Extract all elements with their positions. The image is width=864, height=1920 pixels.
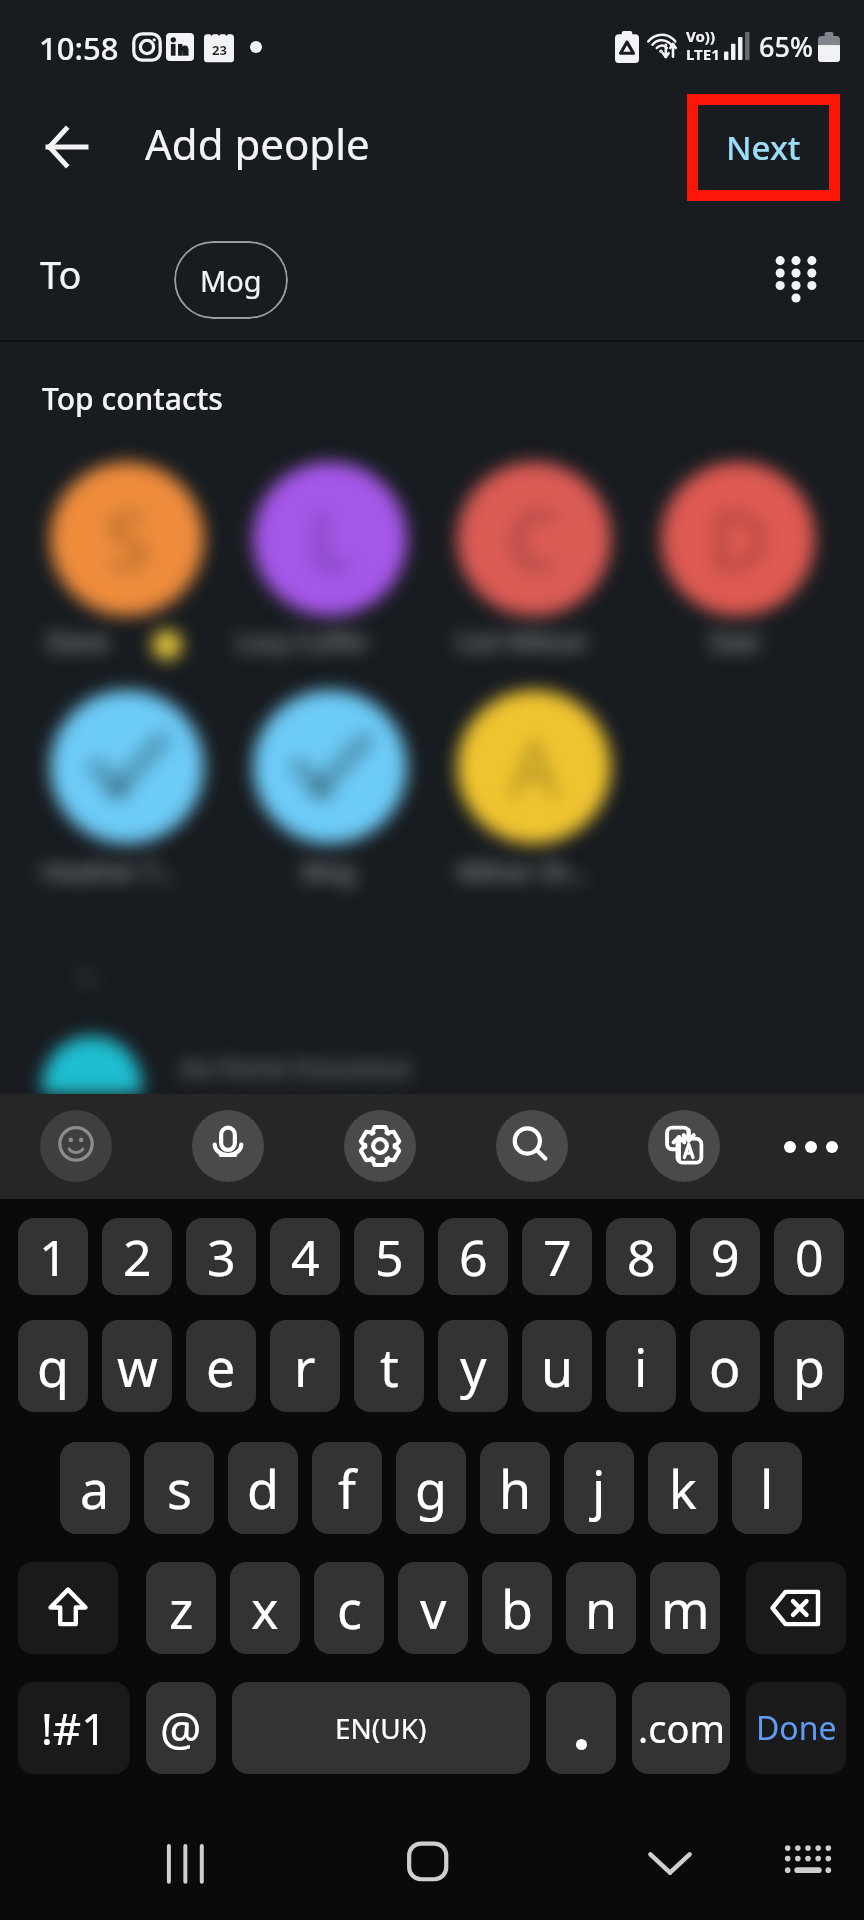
button[interactable]: x — [230, 1562, 300, 1654]
button[interactable]: v — [398, 1562, 468, 1654]
button[interactable]: Search — [496, 1110, 568, 1182]
button[interactable] — [546, 1682, 616, 1774]
button[interactable]: D — [661, 462, 815, 616]
staticText: 10:58 — [39, 27, 119, 69]
button[interactable]: c — [314, 1562, 384, 1654]
staticText: 2 — [123, 1223, 152, 1291]
button[interactable]: d — [228, 1442, 298, 1534]
button[interactable]: 8 — [606, 1218, 676, 1295]
staticText: e — [206, 1331, 236, 1402]
staticText: Mog — [200, 261, 262, 300]
button[interactable]: @ — [146, 1682, 216, 1774]
staticText: Mog — [302, 854, 356, 888]
button[interactable]: Translate — [648, 1110, 720, 1182]
staticText: b — [501, 1573, 533, 1644]
button[interactable]: More options — [776, 1130, 846, 1164]
staticText: Carl Wilson — [456, 624, 588, 658]
button[interactable]: y — [438, 1320, 508, 1412]
staticText: 1 — [39, 1223, 68, 1291]
button[interactable] — [50, 690, 204, 844]
staticText: k — [669, 1453, 697, 1524]
button[interactable]: z — [146, 1562, 216, 1654]
button[interactable]: g — [396, 1442, 466, 1534]
button[interactable]: Hide keyboard — [635, 1825, 705, 1895]
button[interactable]: 0 — [774, 1218, 844, 1295]
button[interactable]: Keyboard settings — [344, 1110, 416, 1182]
button[interactable]: 2 — [102, 1218, 172, 1295]
staticText: @ — [160, 1697, 202, 1760]
button[interactable]: m — [650, 1562, 720, 1654]
button[interactable]: Done — [746, 1682, 846, 1774]
button[interactable]: r — [270, 1320, 340, 1412]
button[interactable]: Emoji — [40, 1110, 112, 1182]
button[interactable]: C — [457, 462, 611, 616]
button[interactable]: A — [457, 690, 611, 844]
button[interactable]: h — [480, 1442, 550, 1534]
button[interactable]: Shift — [18, 1562, 118, 1654]
button[interactable]: EN(UK) — [232, 1682, 530, 1774]
button[interactable]: j — [564, 1442, 634, 1534]
staticText: p — [793, 1331, 825, 1402]
staticText: 3 — [207, 1223, 236, 1291]
button[interactable]: k — [648, 1442, 718, 1534]
button[interactable]: 1 — [18, 1218, 88, 1295]
staticText: q — [37, 1331, 69, 1402]
button[interactable]: 5 — [354, 1218, 424, 1295]
staticText: Aa Home Insurance — [180, 1050, 411, 1084]
staticText: w — [117, 1331, 158, 1402]
staticText: 65% — [759, 28, 813, 65]
staticText: i — [634, 1331, 648, 1402]
button[interactable]: L — [253, 462, 407, 616]
staticText: Milner Sh... — [458, 854, 590, 888]
button[interactable]: Dialpad — [772, 251, 820, 299]
button[interactable]: Backspace — [746, 1562, 846, 1654]
button[interactable]: f — [312, 1442, 382, 1534]
button[interactable]: l — [732, 1442, 802, 1534]
staticText: g — [415, 1453, 447, 1524]
staticText: 8 — [627, 1223, 656, 1291]
button[interactable]: i — [606, 1320, 676, 1412]
button[interactable]: 4 — [270, 1218, 340, 1295]
button[interactable]: s — [144, 1442, 214, 1534]
button[interactable]: w — [102, 1320, 172, 1412]
staticText: n — [585, 1573, 618, 1644]
staticText: Top contacts — [42, 378, 223, 419]
button[interactable]: 9 — [690, 1218, 760, 1295]
staticText: L — [310, 486, 351, 592]
button[interactable]: Recents — [150, 1825, 220, 1895]
staticText: 6 — [459, 1223, 488, 1291]
button[interactable] — [253, 690, 407, 844]
button[interactable]: b — [482, 1562, 552, 1654]
staticText: m — [661, 1573, 710, 1644]
staticText: EN(UK) — [335, 1709, 427, 1747]
button[interactable]: Back — [28, 108, 106, 186]
button[interactable]: q — [18, 1320, 88, 1412]
button[interactable]: Mog — [174, 241, 288, 319]
button[interactable]: !#1 — [18, 1682, 130, 1774]
button[interactable]: Next — [687, 94, 840, 201]
staticText: 5 — [375, 1223, 404, 1291]
button[interactable]: n — [566, 1562, 636, 1654]
staticText: d — [247, 1453, 279, 1524]
button[interactable]: o — [690, 1320, 760, 1412]
button[interactable]: u — [522, 1320, 592, 1412]
button[interactable]: Voice input — [192, 1110, 264, 1182]
button[interactable]: 6 — [438, 1218, 508, 1295]
button[interactable]: Change keyboard — [773, 1825, 843, 1895]
staticText: .com — [638, 1702, 725, 1754]
button[interactable]: 3 — [186, 1218, 256, 1295]
staticText: 0 — [795, 1223, 824, 1291]
staticText: D — [710, 486, 767, 592]
staticText: r — [294, 1331, 316, 1402]
button[interactable]: Home — [392, 1825, 462, 1895]
button[interactable]: 7 — [522, 1218, 592, 1295]
button[interactable]: a — [60, 1442, 130, 1534]
button[interactable]: p — [774, 1320, 844, 1412]
button[interactable]: S — [50, 462, 204, 616]
button[interactable]: t — [354, 1320, 424, 1412]
button[interactable]: .com — [632, 1682, 730, 1774]
button[interactable]: e — [186, 1320, 256, 1412]
staticText: 9 — [711, 1223, 740, 1291]
staticText: Done — [756, 1706, 837, 1750]
staticText: S — [106, 486, 149, 592]
